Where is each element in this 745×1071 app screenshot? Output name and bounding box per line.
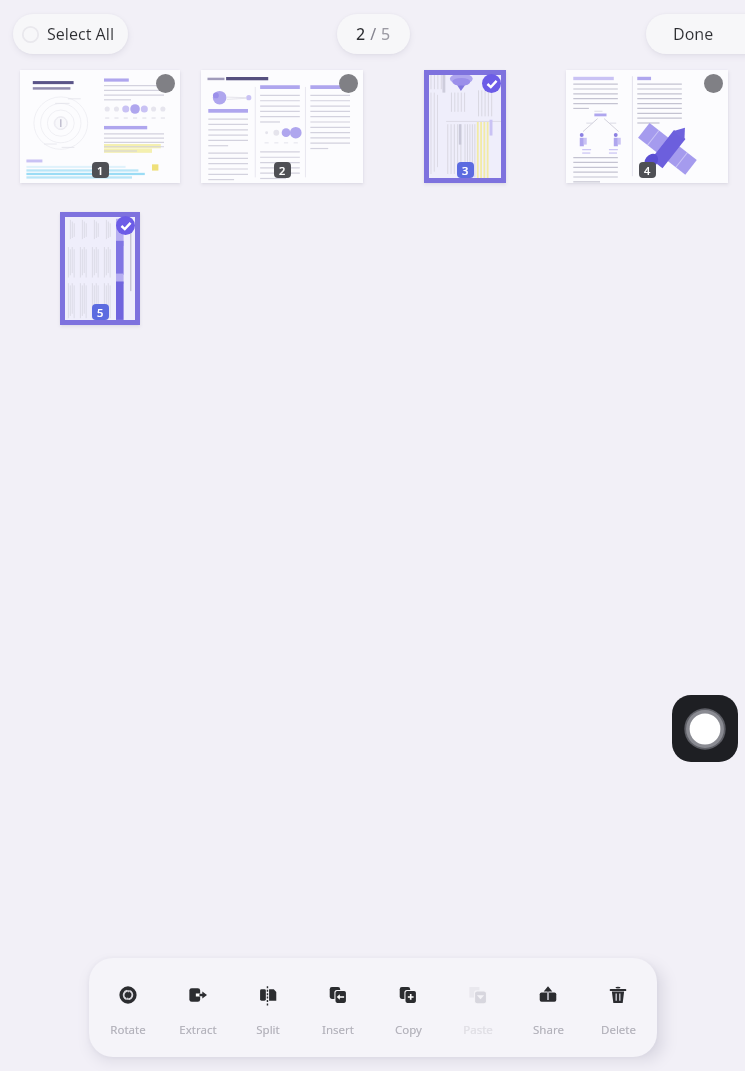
button[interactable]: Select All bbox=[13, 14, 128, 54]
staticText: Insert bbox=[322, 1022, 354, 1038]
button[interactable]: Done bbox=[646, 14, 745, 54]
staticText: Extract bbox=[179, 1022, 217, 1038]
button[interactable]: Select page 1 bbox=[156, 74, 175, 93]
staticText: 2 bbox=[356, 23, 366, 45]
staticText: Rotate bbox=[110, 1022, 146, 1038]
button[interactable]: Rotate bbox=[97, 958, 159, 1057]
button[interactable]: Share bbox=[517, 958, 579, 1057]
staticText: Paste bbox=[463, 1022, 493, 1038]
button[interactable]: Select page 2 bbox=[339, 74, 358, 93]
button[interactable]: Record bbox=[672, 695, 738, 762]
button[interactable]: 3 bbox=[424, 70, 506, 183]
button[interactable]: 1 bbox=[20, 70, 180, 183]
staticText: 2 bbox=[279, 163, 286, 178]
staticText: Copy bbox=[395, 1022, 422, 1038]
staticText: Select All bbox=[47, 23, 115, 45]
button[interactable]: Deselect page 3 bbox=[482, 74, 501, 93]
button[interactable]: Copy bbox=[377, 958, 439, 1057]
button[interactable]: Delete bbox=[587, 958, 649, 1057]
button[interactable]: Split bbox=[237, 958, 299, 1057]
staticText: Delete bbox=[601, 1022, 636, 1038]
button[interactable]: 2 bbox=[201, 70, 363, 183]
staticText: 3 bbox=[462, 163, 469, 178]
button[interactable]: Paste bbox=[447, 958, 509, 1057]
button[interactable]: Deselect page 5 bbox=[116, 216, 135, 235]
button[interactable]: Select page 4 bbox=[704, 74, 723, 93]
staticText: / bbox=[366, 23, 381, 45]
staticText: Split bbox=[256, 1022, 280, 1038]
button[interactable]: 5 bbox=[60, 212, 140, 325]
staticText: 5 bbox=[381, 23, 391, 45]
staticText: Done bbox=[673, 23, 714, 45]
button[interactable]: Extract bbox=[167, 958, 229, 1057]
button[interactable]: 4 bbox=[566, 70, 728, 183]
staticText: 4 bbox=[644, 163, 651, 178]
button[interactable]: Insert bbox=[307, 958, 369, 1057]
staticText: 5 bbox=[97, 305, 104, 320]
staticText: Share bbox=[533, 1022, 564, 1038]
staticText: 1 bbox=[97, 163, 104, 178]
